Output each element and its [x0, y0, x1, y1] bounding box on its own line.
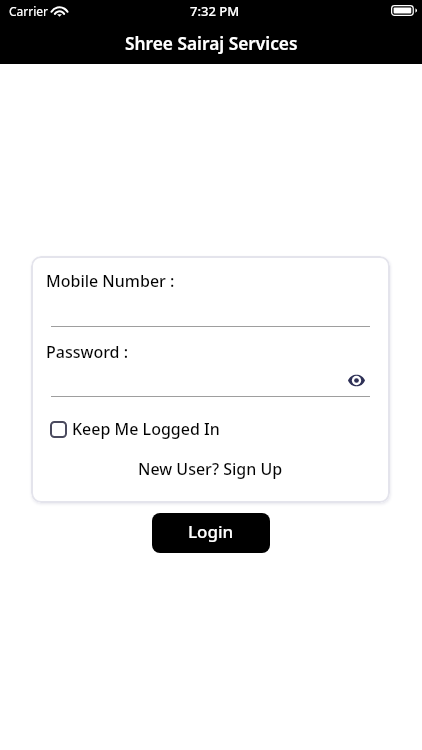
button[interactable]: Login — [152, 513, 270, 553]
staticText: Mobile Number : — [46, 270, 175, 292]
button[interactable]: Mobile Number input — [46, 256, 375, 327]
staticText: Carrier — [9, 3, 49, 19]
button[interactable]: Password input — [46, 372, 375, 388]
staticText: Shree Sairaj Services — [125, 32, 298, 56]
button[interactable]: New User? Sign Up — [130, 456, 291, 482]
staticText: New User? Sign Up — [138, 458, 283, 480]
button[interactable]: Keep Me Logged In — [46, 418, 220, 440]
staticText: 7:32 PM — [190, 2, 240, 20]
staticText: Password : — [46, 341, 129, 363]
button[interactable]: Show password — [345, 372, 367, 388]
staticText: Keep Me Logged In — [72, 418, 220, 440]
staticText: Login — [188, 520, 234, 543]
